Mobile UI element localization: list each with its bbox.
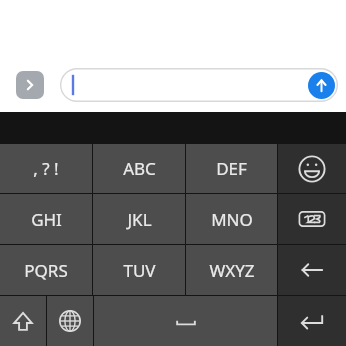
button[interactable]: JKL	[93, 194, 185, 244]
button[interactable]: GHI	[0, 194, 92, 244]
staticText: GHI	[31, 208, 62, 231]
button[interactable]: Enter	[278, 296, 346, 346]
staticText: MNO	[211, 208, 253, 231]
button[interactable]: Space	[94, 296, 277, 346]
button[interactable]: Send	[308, 72, 335, 99]
staticText: TUV	[123, 259, 156, 282]
staticText: , ? !	[33, 157, 59, 180]
button[interactable]: WXYZ	[186, 245, 277, 295]
button[interactable]: DEF	[186, 144, 277, 193]
button[interactable]: ABC	[93, 144, 185, 193]
staticText: WXYZ	[209, 259, 255, 282]
button[interactable]: MNO	[186, 194, 277, 244]
staticText: DEF	[216, 157, 247, 180]
button[interactable]: , ? !	[0, 144, 92, 193]
button[interactable]: Change keyboard language	[47, 296, 93, 346]
button[interactable]: PQRS	[0, 245, 92, 295]
button[interactable]: Next field	[16, 71, 44, 99]
button[interactable]: Shift	[0, 296, 46, 346]
staticText: PQRS	[24, 259, 68, 282]
button[interactable]: Backspace	[278, 245, 346, 295]
button[interactable]: Emoji	[278, 144, 346, 193]
button[interactable]: Text input	[60, 68, 338, 102]
staticText: ABC	[123, 157, 156, 180]
button[interactable]: TUV	[93, 245, 185, 295]
button[interactable]: Numbers and symbols	[278, 194, 346, 244]
staticText: JKL	[127, 208, 152, 231]
